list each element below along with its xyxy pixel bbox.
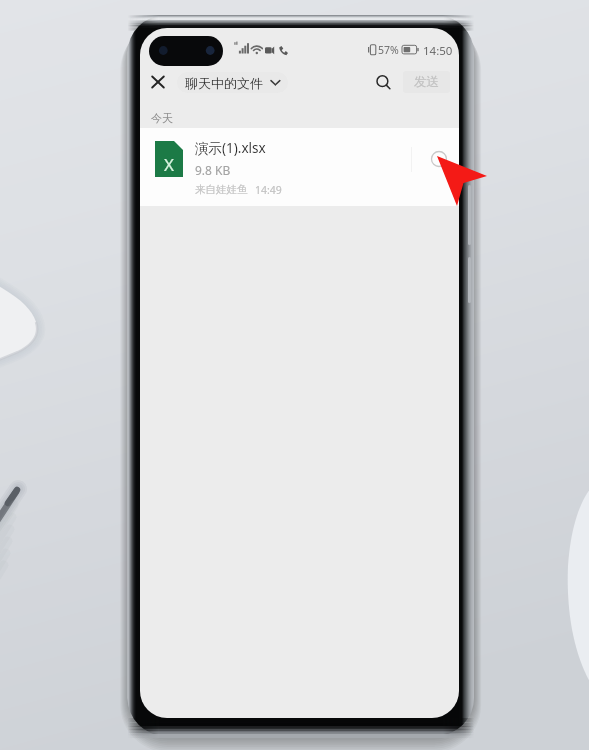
staticText: 来自娃娃鱼 bbox=[195, 183, 248, 196]
staticText: 演示(1).xlsx bbox=[195, 139, 266, 157]
button[interactable]: 聊天中的文件 bbox=[177, 72, 288, 93]
staticText: 9.8 KB bbox=[195, 162, 231, 178]
staticText: 57% bbox=[378, 43, 399, 57]
staticText: 14:49 bbox=[255, 183, 282, 197]
button[interactable]: Select file bbox=[412, 128, 459, 206]
button[interactable]: X bbox=[140, 128, 459, 206]
staticText: X bbox=[164, 153, 174, 176]
staticText: 今天 bbox=[151, 111, 173, 125]
staticText: 聊天中的文件 bbox=[185, 75, 263, 91]
button[interactable]: Close bbox=[141, 66, 174, 98]
staticText: 发送 bbox=[414, 74, 439, 90]
button[interactable]: Search bbox=[368, 67, 399, 98]
staticText: 14:50 bbox=[423, 43, 453, 57]
button[interactable]: 发送 bbox=[403, 71, 450, 93]
